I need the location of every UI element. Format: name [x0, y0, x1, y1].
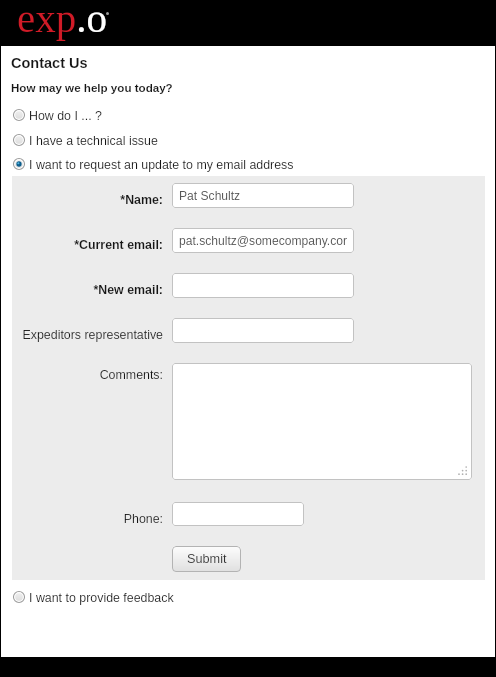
staticText: *Name: — [120, 193, 163, 207]
staticText: pat.schultz@somecompany.cor — [179, 234, 347, 248]
button[interactable]: Name — [172, 183, 354, 208]
button[interactable]: Expeditors representative — [172, 318, 354, 343]
staticText: *Current email: — [74, 238, 163, 252]
button[interactable]: I want to request an update to my email … — [13, 157, 294, 171]
staticText: *New email: — [93, 283, 163, 297]
button[interactable]: Current email — [172, 228, 354, 253]
button[interactable]: New email — [172, 273, 354, 298]
staticText: Pat Schultz — [179, 189, 241, 203]
staticText: How may we help you today? — [11, 81, 173, 94]
staticText: How do I ... ? — [29, 109, 103, 123]
staticText: Comments: — [99, 368, 163, 382]
button[interactable]: I have a technical issue — [13, 133, 158, 147]
staticText: I want to provide feedback — [29, 591, 174, 605]
staticText: Phone: — [123, 512, 163, 526]
staticText: Submit — [187, 552, 227, 566]
button[interactable]: How do I ... ? — [13, 108, 103, 122]
staticText: Expeditors representative — [22, 328, 163, 342]
staticText: Contact Us — [11, 55, 88, 71]
button[interactable]: I want to provide feedback — [13, 590, 174, 604]
staticText: I want to request an update to my email … — [29, 158, 294, 172]
button[interactable]: Phone — [172, 502, 304, 526]
button[interactable]: Submit — [172, 546, 241, 572]
staticText: exp.o — [17, 0, 107, 40]
staticText: I have a technical issue — [29, 134, 158, 148]
button[interactable]: Comments — [172, 363, 472, 480]
